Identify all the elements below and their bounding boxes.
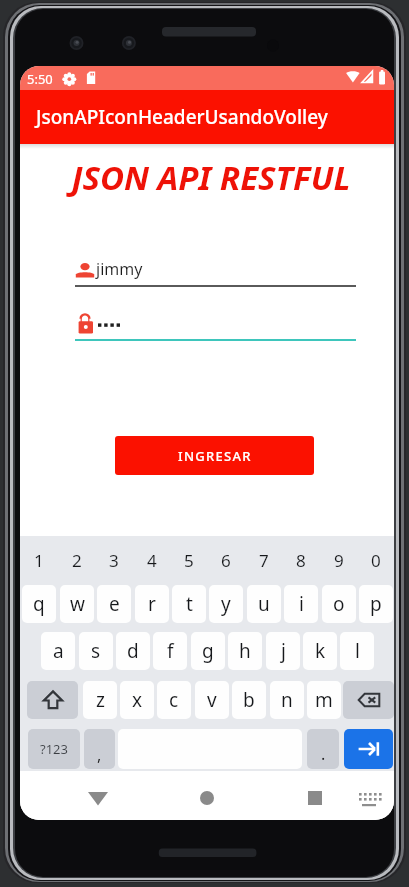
staticText: f [167, 638, 174, 664]
staticText: 1 [34, 549, 44, 572]
button[interactable]: 3 [97, 538, 131, 582]
button[interactable]: u [247, 585, 281, 623]
staticText: d [127, 638, 139, 664]
button[interactable]: p [359, 585, 393, 623]
button[interactable]: w [60, 585, 94, 623]
button[interactable]: ?123 [28, 729, 80, 769]
button[interactable]: h [228, 632, 262, 670]
staticText: b [243, 687, 255, 713]
staticText: 4 [147, 549, 157, 572]
button[interactable]: i [284, 585, 318, 623]
button[interactable]: m [307, 681, 341, 719]
button[interactable]: 6 [209, 538, 243, 582]
button[interactable]: 7 [247, 538, 281, 582]
button[interactable]: Recent apps [275, 771, 355, 820]
staticText: jimmy [96, 258, 143, 280]
staticText: l [355, 638, 360, 664]
staticText: q [33, 591, 45, 617]
button[interactable]: t [172, 585, 206, 623]
button[interactable]: x [120, 681, 154, 719]
staticText: c [169, 687, 179, 713]
staticText: m [315, 687, 333, 713]
button[interactable]: e [97, 585, 131, 623]
staticText: t [186, 591, 193, 617]
button[interactable]: q [22, 585, 56, 623]
staticText: r [148, 591, 156, 617]
button[interactable]: Shift [27, 681, 78, 719]
staticText: v [207, 687, 217, 713]
button[interactable]: Backspace [343, 681, 394, 719]
button[interactable]: . [307, 729, 339, 769]
button[interactable]: v [195, 681, 229, 719]
button[interactable]: 0 [359, 538, 393, 582]
button[interactable]: 4 [135, 538, 169, 582]
button[interactable]: 9 [322, 538, 356, 582]
button[interactable]: y [209, 585, 243, 623]
staticText: 8 [296, 549, 306, 572]
staticText: g [202, 638, 214, 664]
button[interactable]: a [41, 632, 75, 670]
button[interactable]: k [303, 632, 337, 670]
staticText: w [70, 591, 85, 617]
button[interactable]: Home [187, 771, 267, 820]
staticText: JsonAPIconHeaderUsandoVolley [36, 104, 328, 130]
staticText: i [299, 591, 304, 617]
staticText: n [281, 687, 293, 713]
staticText: k [315, 638, 326, 664]
button[interactable]: Enter [344, 729, 393, 769]
staticText: j [281, 638, 286, 664]
button[interactable]: 2 [60, 538, 94, 582]
button[interactable]: Change keyboard [355, 771, 394, 820]
button[interactable]: c [157, 681, 191, 719]
button[interactable]: 8 [284, 538, 318, 582]
staticText: 3 [109, 549, 119, 572]
button[interactable]: j [266, 632, 300, 670]
staticText: z [96, 687, 105, 713]
button[interactable]: INGRESAR [115, 436, 314, 475]
button[interactable]: 5 [172, 538, 206, 582]
staticText: u [258, 591, 270, 617]
staticText: , [97, 744, 102, 766]
button[interactable]: g [191, 632, 225, 670]
button[interactable]: s [79, 632, 113, 670]
staticText: e [109, 591, 120, 617]
button[interactable]: f [153, 632, 187, 670]
staticText: y [221, 591, 231, 617]
staticText: 9 [334, 549, 344, 572]
staticText: s [91, 638, 101, 664]
staticText: INGRESAR [178, 447, 252, 465]
staticText: . [321, 743, 326, 765]
button[interactable]: 1 [22, 538, 56, 582]
staticText: 0 [371, 549, 381, 572]
staticText: 5 [184, 549, 194, 572]
button[interactable]: o [322, 585, 356, 623]
staticText: 6 [221, 549, 231, 572]
staticText: o [333, 591, 345, 617]
staticText: 5:50 [27, 70, 53, 88]
button[interactable]: l [340, 632, 374, 670]
staticText: JSON API RESTFUL [24, 155, 394, 200]
staticText: 2 [72, 549, 82, 572]
button[interactable]: z [83, 681, 117, 719]
staticText: 7 [259, 549, 269, 572]
button[interactable]: b [232, 681, 266, 719]
button[interactable]: , [84, 729, 115, 769]
staticText: h [239, 638, 251, 664]
staticText: x [132, 687, 143, 713]
button[interactable]: r [135, 585, 169, 623]
button[interactable]: Back [57, 771, 137, 820]
button[interactable]: d [116, 632, 150, 670]
staticText: p [370, 591, 382, 617]
staticText: a [53, 638, 64, 664]
staticText: ?123 [40, 740, 68, 758]
button[interactable]: n [270, 681, 304, 719]
